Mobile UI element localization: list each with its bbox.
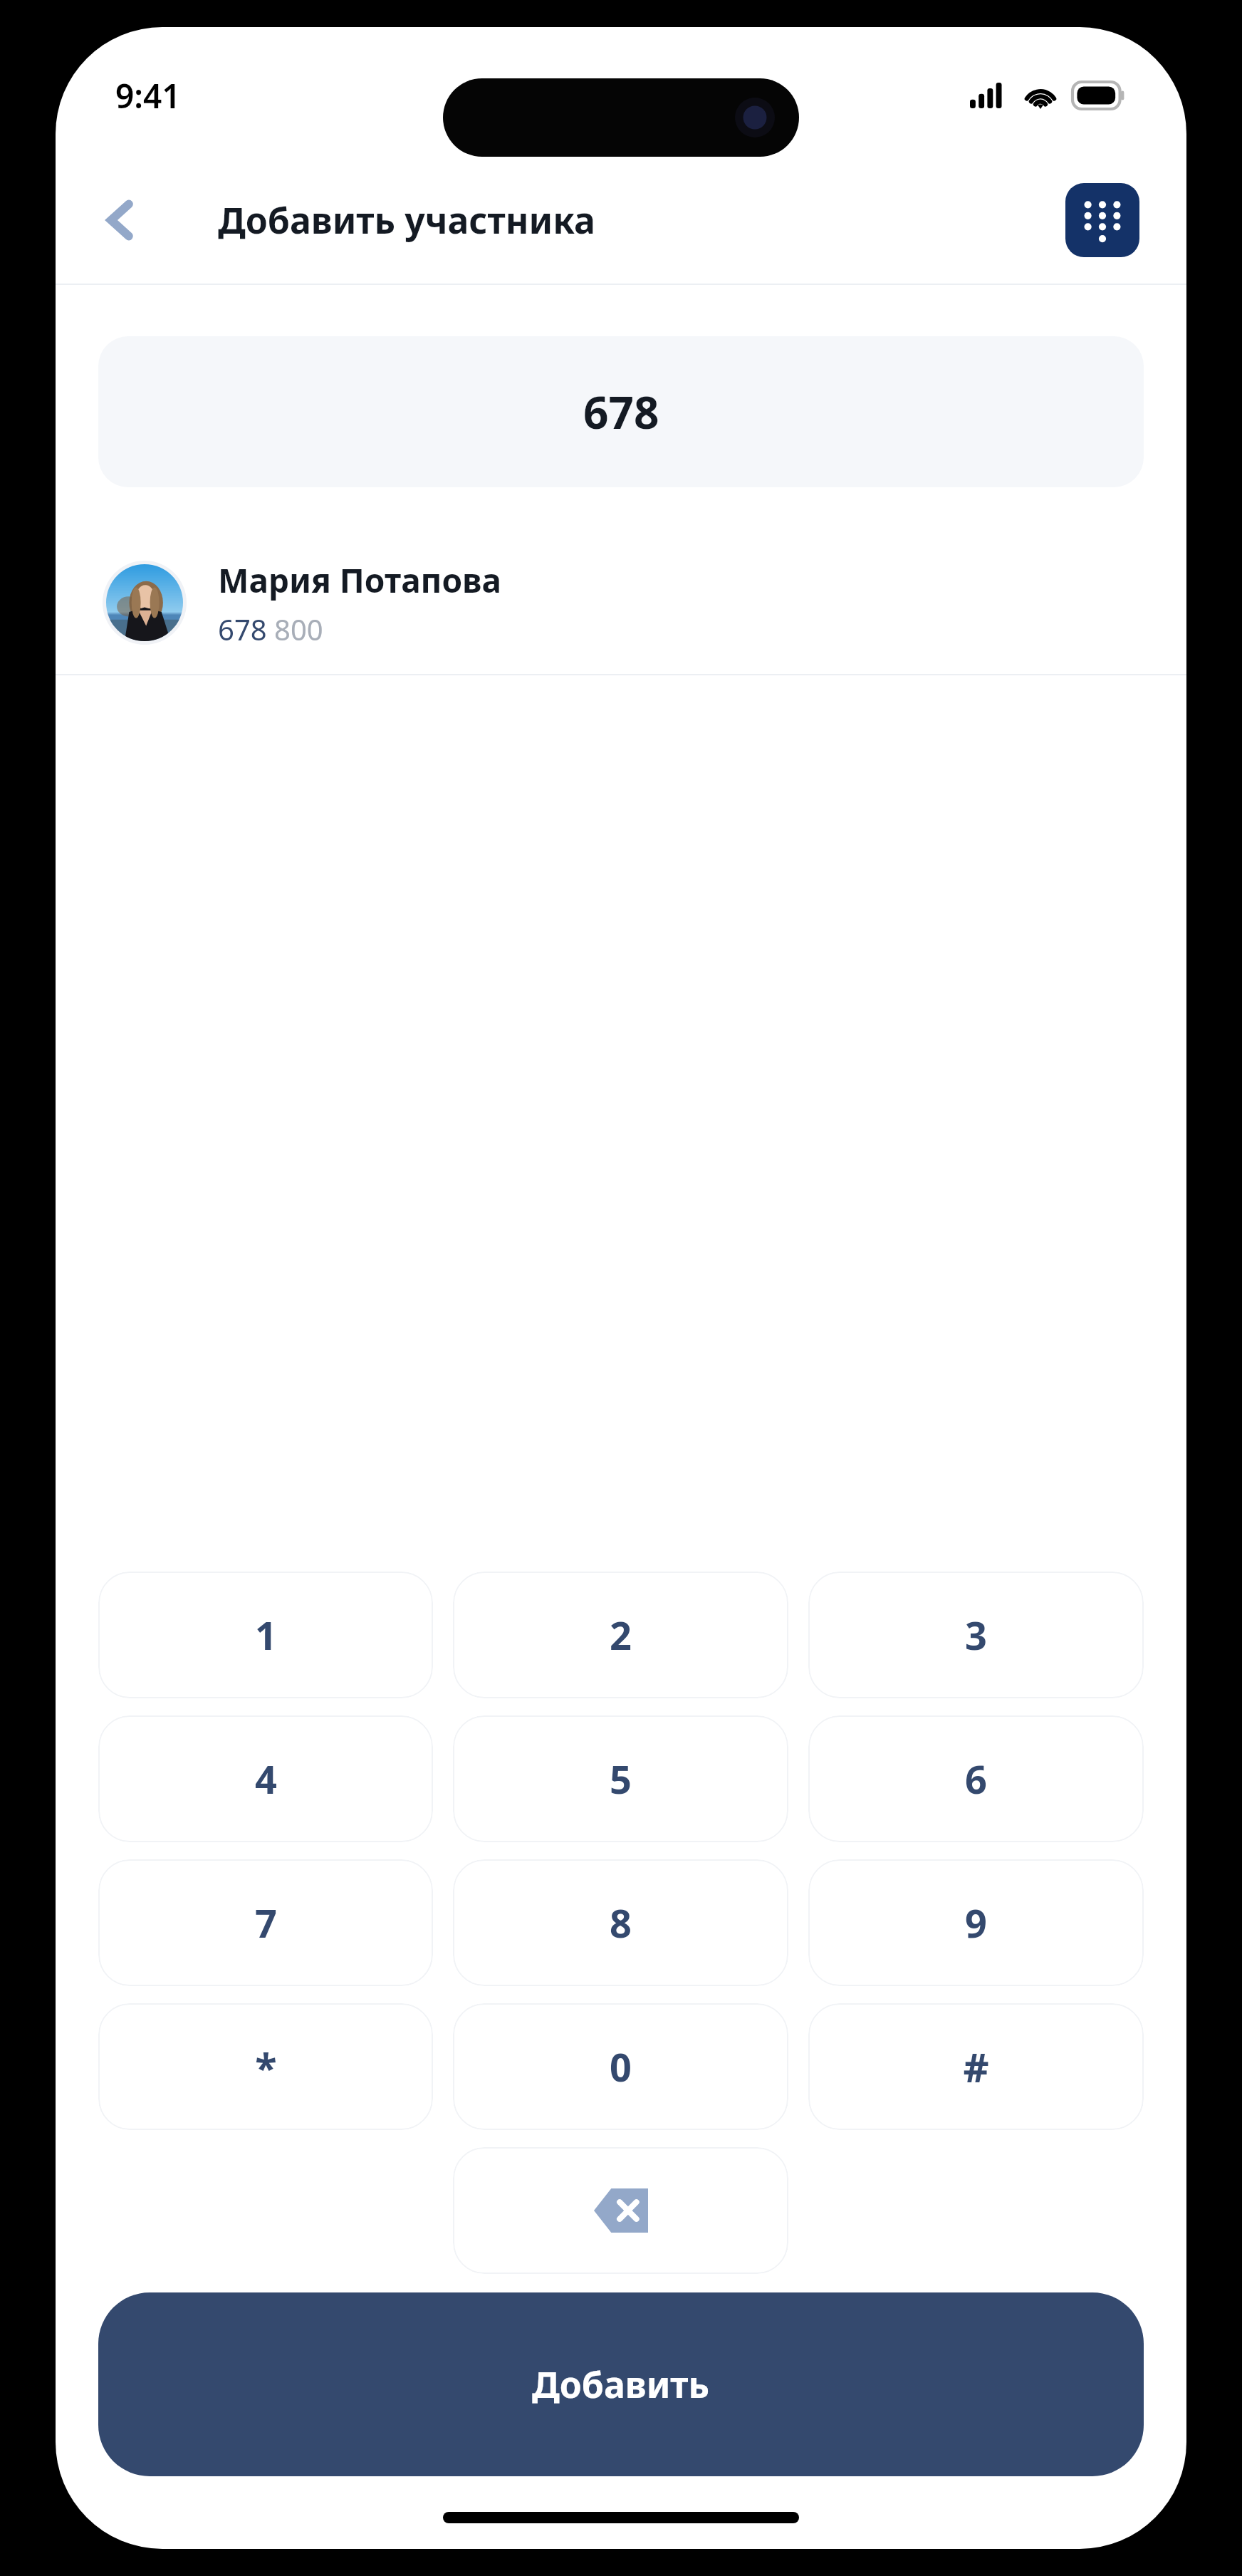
staticText: 3 xyxy=(965,1609,987,1661)
button[interactable]: 678 xyxy=(98,336,1144,487)
button[interactable]: 2 xyxy=(453,1572,788,1698)
staticText: * xyxy=(255,2040,277,2094)
staticText: Добавить участника xyxy=(218,196,595,244)
button[interactable]: 4 xyxy=(98,1715,433,1842)
button[interactable]: 1 xyxy=(98,1572,433,1698)
staticText: 0 xyxy=(610,2040,632,2093)
button[interactable]: 5 xyxy=(453,1715,788,1842)
staticText: Мария Потапова xyxy=(218,558,501,603)
staticText: 678 800 xyxy=(218,610,323,648)
button[interactable]: * xyxy=(98,2003,433,2130)
staticText: 9 xyxy=(965,1896,987,1949)
other: Back xyxy=(105,200,134,240)
button[interactable]: Back xyxy=(95,190,144,250)
staticText: 2 xyxy=(610,1609,632,1661)
staticText: 5 xyxy=(610,1752,632,1805)
button[interactable]: Keypad xyxy=(1065,183,1139,257)
staticText: 1 xyxy=(255,1609,277,1661)
button[interactable]: # xyxy=(808,2003,1144,2130)
staticText: 4 xyxy=(255,1752,277,1805)
button[interactable]: Мария Потапова xyxy=(56,531,1186,674)
button[interactable]: Добавить xyxy=(98,2292,1144,2476)
button[interactable]: 7 xyxy=(98,1859,433,1986)
staticText: 7 xyxy=(255,1896,277,1949)
button[interactable]: 9 xyxy=(808,1859,1144,1986)
button[interactable]: 6 xyxy=(808,1715,1144,1842)
button[interactable]: 8 xyxy=(453,1859,788,1986)
button[interactable]: 3 xyxy=(808,1572,1144,1698)
staticText: 6 xyxy=(965,1752,987,1805)
staticText: Добавить xyxy=(532,2360,710,2409)
button[interactable]: 0 xyxy=(453,2003,788,2130)
staticText: 8 xyxy=(610,1896,632,1949)
staticText: 678 xyxy=(583,382,659,442)
button[interactable]: Backspace xyxy=(453,2147,788,2274)
staticText: 9:41 xyxy=(115,73,181,118)
staticText: # xyxy=(963,2040,989,2094)
